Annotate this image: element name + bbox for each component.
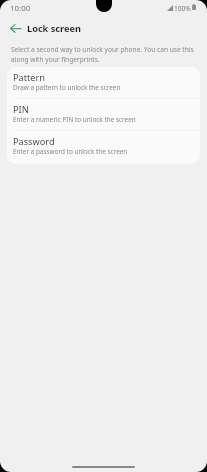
button[interactable]: PIN [7, 99, 200, 130]
button[interactable]: Password [7, 131, 200, 164]
staticText: Password [13, 135, 55, 148]
staticText: 100% [174, 4, 191, 13]
button[interactable]: Pattern [7, 67, 200, 98]
staticText: Select a second way to unlock your phone… [11, 45, 195, 64]
staticText: Lock screen [27, 22, 81, 35]
staticText: Enter a password to unlock the screen [13, 147, 128, 156]
staticText: PIN [13, 103, 29, 116]
button[interactable]: Back [4, 17, 26, 39]
staticText: Enter a numeric PIN to unlock the screen [13, 115, 136, 124]
staticText: 10:00 [10, 3, 31, 14]
staticText: Pattern [13, 71, 45, 84]
staticText: Draw a pattern to unlock the screen [13, 83, 121, 92]
